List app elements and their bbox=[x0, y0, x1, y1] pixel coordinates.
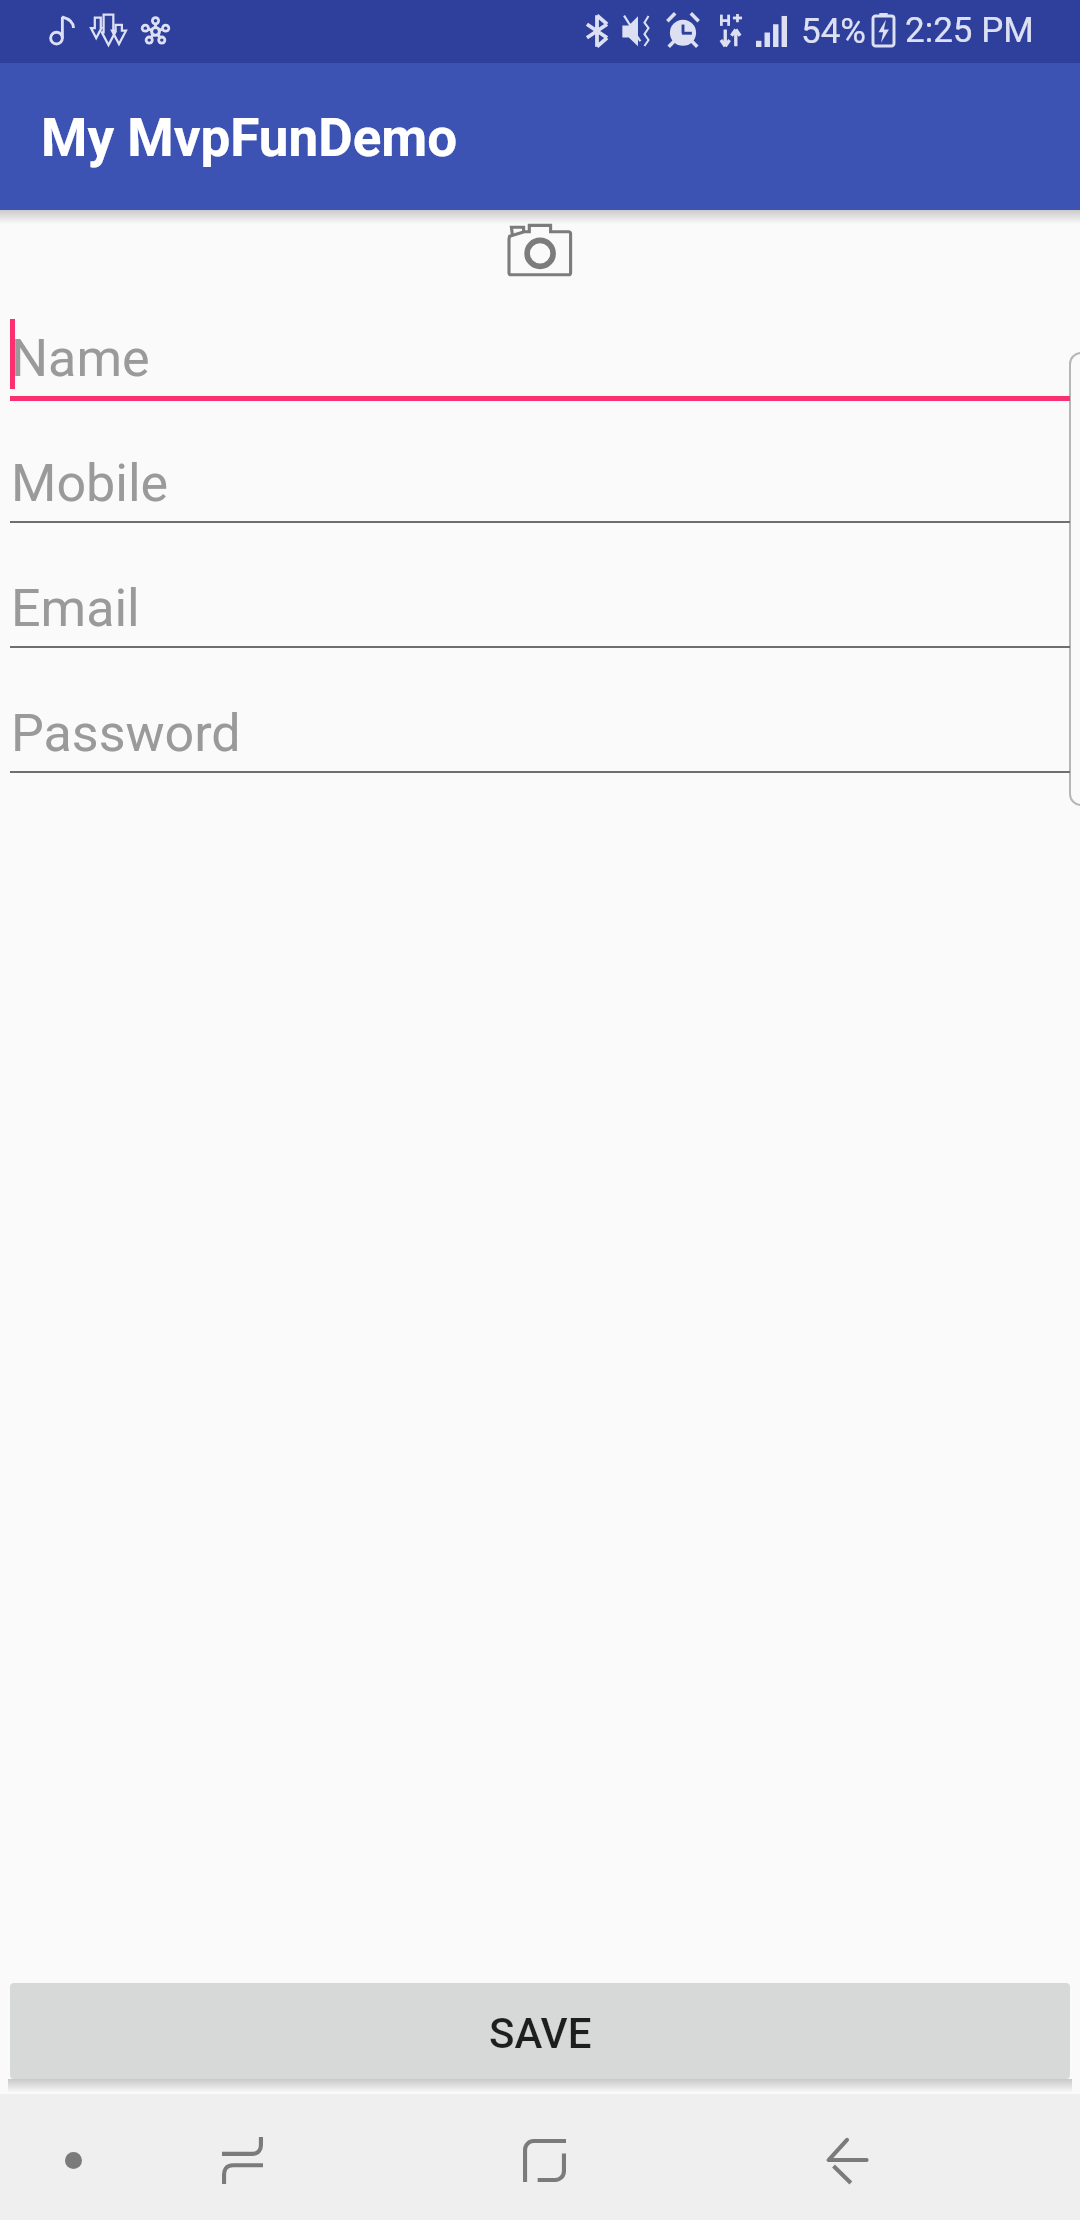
staticText: Password bbox=[11, 703, 241, 764]
staticText: My MvpFunDemo bbox=[41, 107, 458, 169]
button[interactable]: Name bbox=[0, 275, 1080, 400]
button[interactable]: Home bbox=[469, 2097, 619, 2220]
staticText: 2:25 PM bbox=[905, 10, 1034, 51]
button[interactable]: Add photo bbox=[505, 222, 575, 280]
staticText: Mobile bbox=[11, 453, 169, 514]
button[interactable]: Hide navigation bar bbox=[0, 2097, 148, 2220]
button[interactable]: Email bbox=[0, 525, 1080, 650]
button[interactable]: SAVE bbox=[10, 1983, 1070, 2079]
staticText: 54% bbox=[801, 11, 866, 52]
button[interactable]: Back bbox=[772, 2097, 922, 2220]
button[interactable]: Mobile bbox=[0, 400, 1080, 525]
button[interactable]: Password bbox=[0, 650, 1080, 775]
button[interactable]: Recent apps bbox=[167, 2097, 317, 2220]
staticText: SAVE bbox=[489, 2009, 592, 2058]
staticText: Email bbox=[11, 578, 140, 639]
staticText: Name bbox=[11, 328, 150, 389]
